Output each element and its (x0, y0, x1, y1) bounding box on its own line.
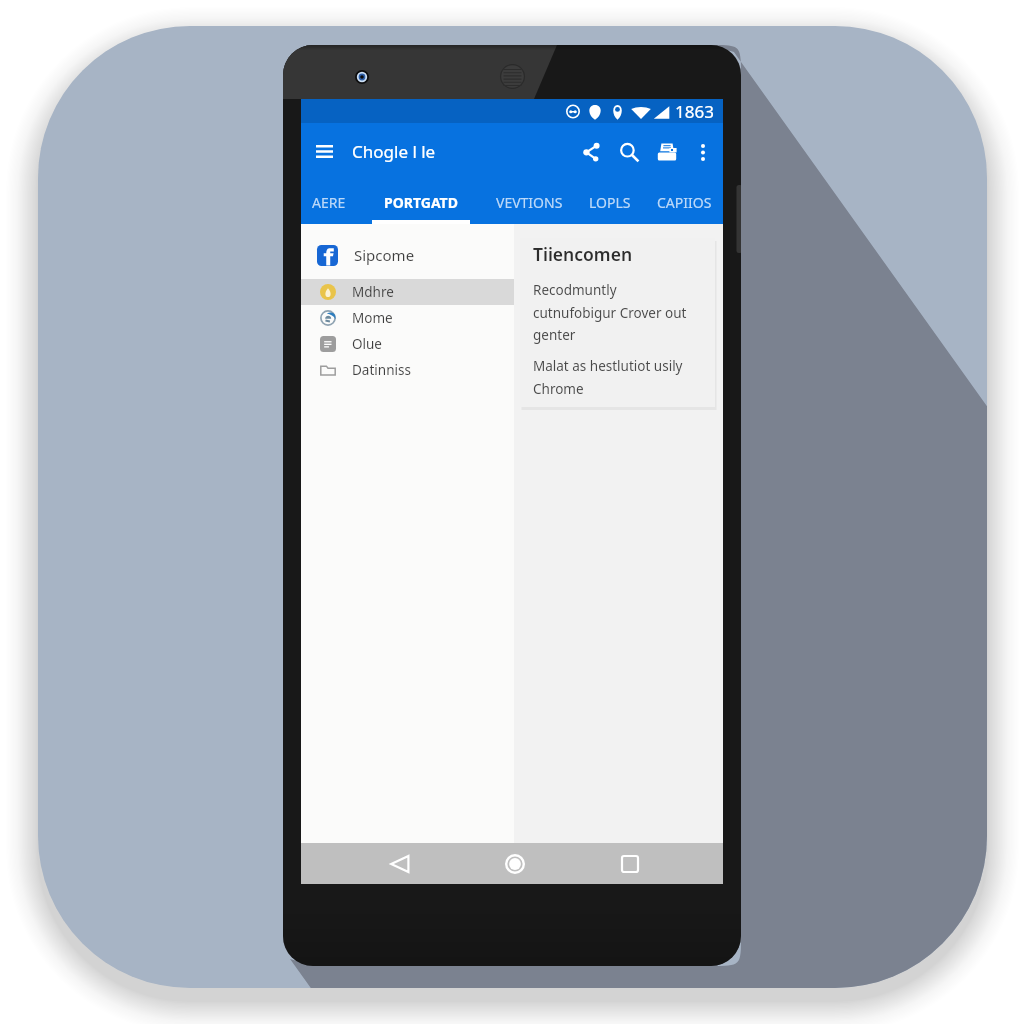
button[interactable]: Print (648, 133, 686, 171)
button[interactable]: More options (686, 135, 720, 169)
button[interactable]: LOPLS (589, 180, 631, 224)
staticText: Tiiencomen (533, 242, 633, 266)
button[interactable]: Olue (301, 331, 514, 357)
button[interactable]: Mdhre (301, 279, 514, 305)
button[interactable]: PORTGATD (372, 180, 470, 224)
staticText: Mome (352, 309, 393, 327)
button[interactable]: Search (610, 133, 648, 171)
button[interactable]: Datinniss (301, 357, 514, 383)
button[interactable]: Mome (301, 305, 514, 331)
staticText: 1863 (675, 100, 714, 123)
staticText: CAPIIOS (657, 193, 712, 212)
button[interactable]: AERE (312, 180, 346, 224)
staticText: VEVTIONS (496, 193, 563, 212)
staticText: PORTGATD (384, 193, 458, 212)
staticText: Mdhre (352, 283, 394, 301)
button[interactable]: Sipcome (301, 231, 514, 279)
button[interactable]: Tiiencomen (520, 238, 715, 407)
button[interactable]: Home (457, 843, 572, 884)
button[interactable]: Share (572, 133, 610, 171)
staticText: Olue (352, 335, 382, 353)
staticText: Chogle l le (352, 140, 436, 163)
button[interactable]: CAPIIOS (657, 180, 712, 224)
staticText: LOPLS (589, 193, 631, 212)
button[interactable]: Menu (304, 131, 345, 172)
staticText: Malat as hestlutiot usily Chrome (533, 357, 683, 397)
staticText: Sipcome (354, 245, 415, 265)
staticText: Recodmuntly cutnufobigur Crover out gent… (533, 281, 687, 343)
staticText: Datinniss (352, 361, 411, 379)
staticText: AERE (312, 193, 346, 212)
button[interactable]: Back (342, 843, 457, 884)
button[interactable]: Recents (572, 843, 687, 884)
button[interactable]: VEVTIONS (496, 180, 563, 224)
